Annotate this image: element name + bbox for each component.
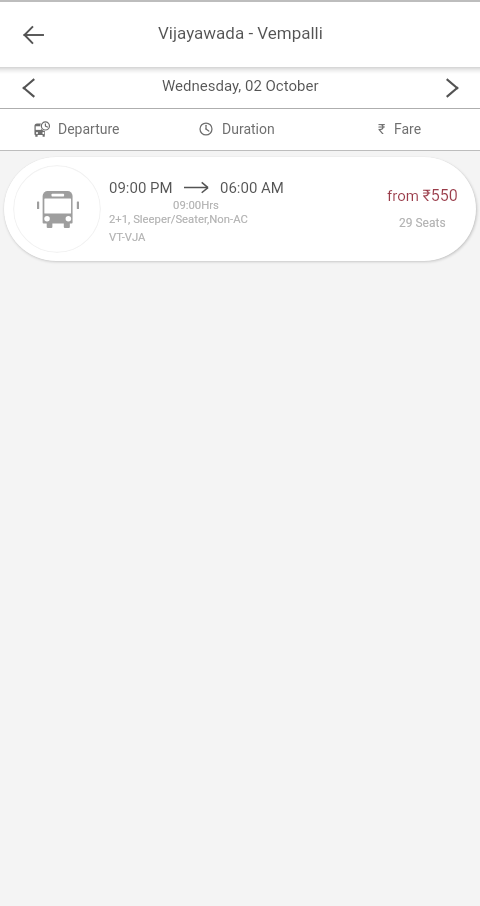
staticText: Vijayawada - Vempalli — [158, 23, 323, 43]
staticText: VT-VJA — [109, 231, 146, 244]
button[interactable]: Departure — [0, 109, 160, 149]
staticText: 2+1, Sleeper/Seater,Non-AC — [109, 213, 248, 226]
button[interactable]: ₹ — [320, 109, 480, 149]
staticText: Departure — [58, 121, 120, 137]
staticText: ₹ — [378, 121, 385, 137]
staticText: from ₹550 — [387, 186, 458, 205]
button[interactable]: Next day — [432, 68, 472, 108]
button[interactable]: 09:00 PM — [4, 157, 476, 261]
staticText: Wednesday, 02 October — [162, 77, 319, 95]
staticText: 09:00 PM — [109, 179, 173, 197]
staticText: 09:00Hrs — [109, 199, 283, 212]
button[interactable]: Previous day — [8, 68, 48, 108]
staticText: 29 Seats — [399, 216, 446, 230]
staticText: Fare — [394, 121, 422, 137]
button[interactable]: Back — [9, 11, 57, 59]
staticText: Duration — [222, 121, 275, 137]
button[interactable]: Duration — [160, 109, 320, 149]
staticText: 06:00 AM — [220, 179, 284, 197]
